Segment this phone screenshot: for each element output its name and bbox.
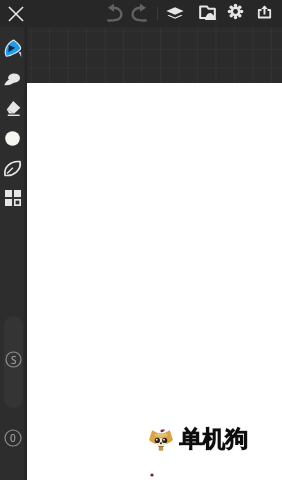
- button[interactable]: Layers: [166, 3, 184, 21]
- staticText: 单机狗: [179, 425, 248, 454]
- button[interactable]: Eraser: [4, 100, 21, 117]
- button[interactable]: Smudge: [4, 70, 21, 87]
- button[interactable]: Shape: [4, 160, 21, 177]
- button[interactable]: Settings: [228, 4, 243, 19]
- button[interactable]: Colour: [4, 130, 21, 147]
- button[interactable]: Palette: [5, 190, 21, 206]
- button[interactable]: Redo: [129, 2, 151, 24]
- button[interactable]: Brush: [4, 40, 21, 57]
- staticText: 0: [10, 431, 16, 445]
- button[interactable]: Share: [257, 4, 272, 19]
- button[interactable]: Close: [5, 3, 27, 25]
- staticText: S: [11, 353, 17, 367]
- button[interactable]: Undo: [103, 2, 125, 24]
- button[interactable]: Open project: [199, 3, 216, 20]
- button[interactable]: Opacity: [4, 429, 22, 447]
- button[interactable]: Brush size: [4, 316, 23, 408]
